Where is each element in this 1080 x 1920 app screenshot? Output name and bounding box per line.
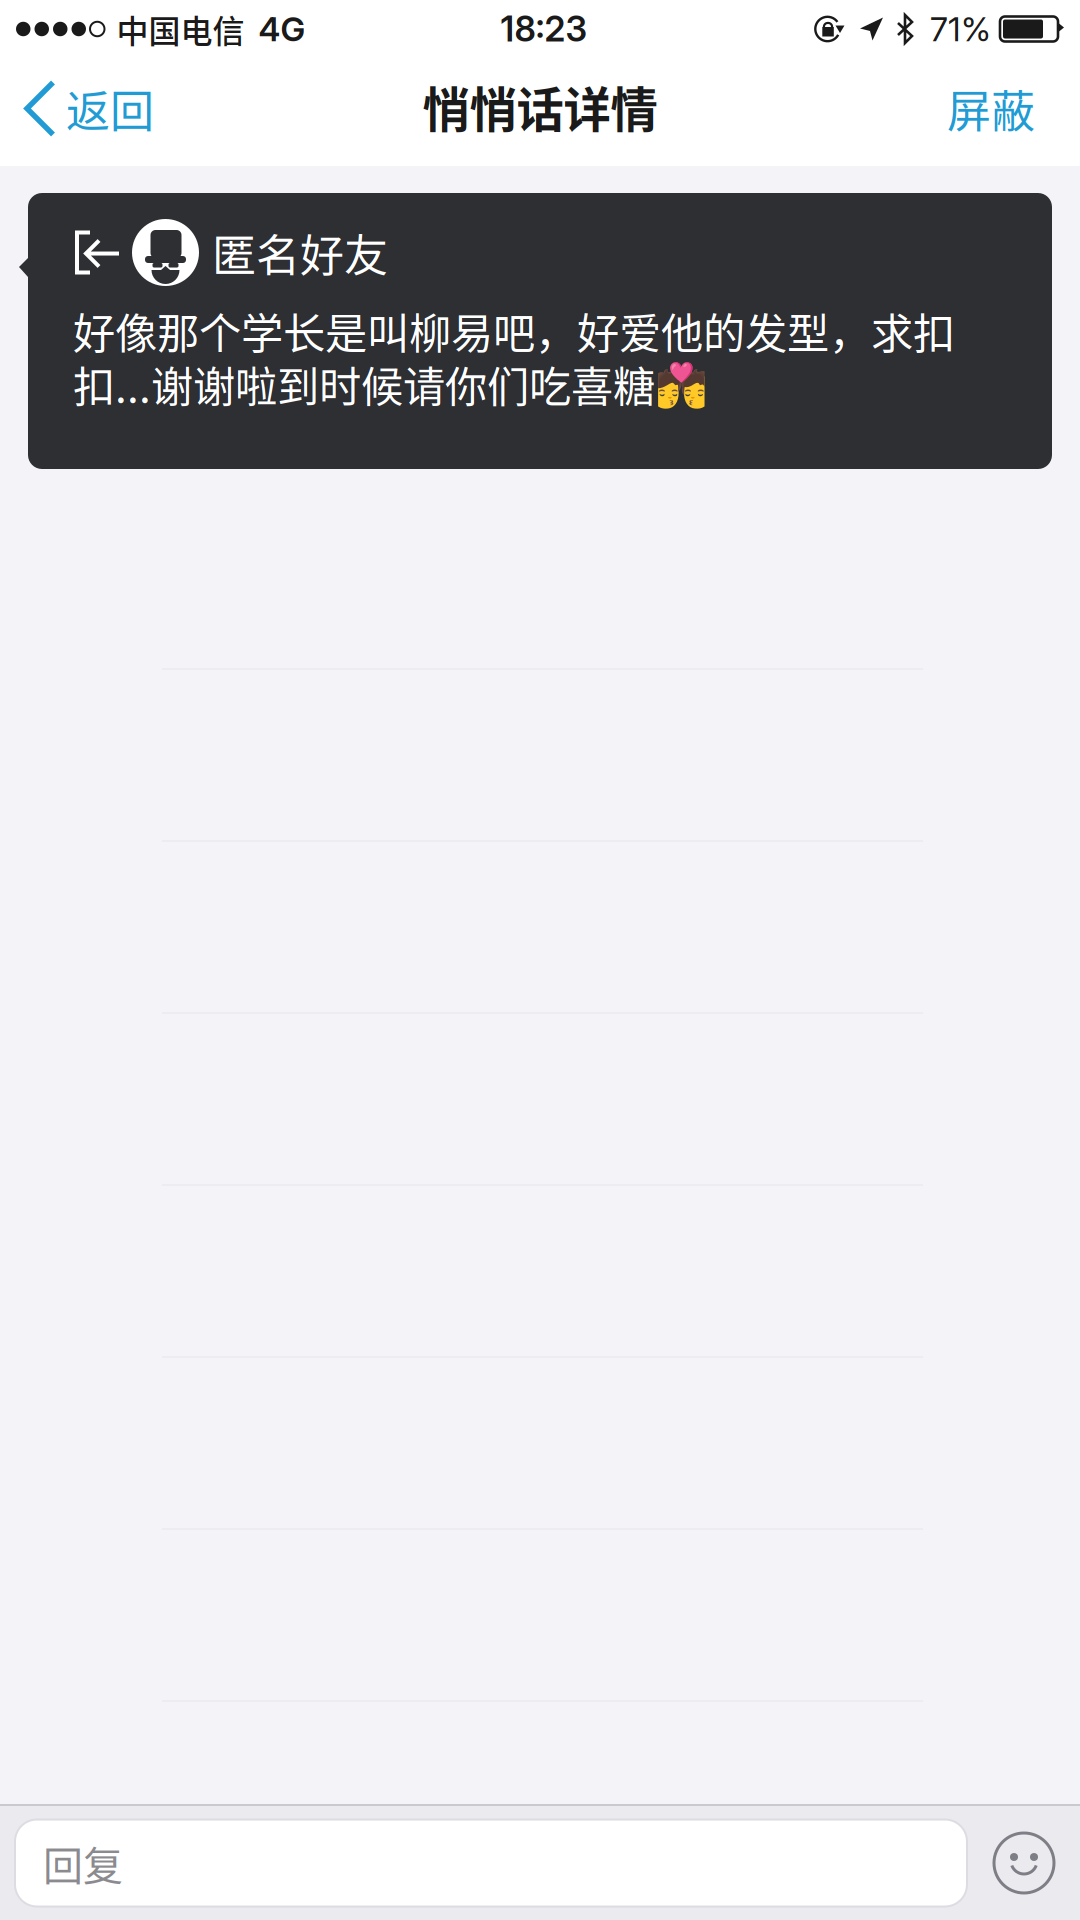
staticText: 中国电信 (116, 6, 244, 52)
staticText: 回复 (43, 1834, 123, 1892)
button[interactable]: Emoji (967, 1806, 1080, 1920)
staticText: 扣...谢谢啦到时候请你们吃喜糖💏 (73, 353, 708, 414)
staticText: 屏蔽 (947, 77, 1035, 140)
button[interactable]: 屏蔽 (931, 61, 1080, 161)
button[interactable]: 返回 (0, 61, 170, 161)
staticText: 悄悄话详情 (422, 72, 657, 141)
staticText: 返回 (66, 77, 154, 140)
staticText: 好像那个学长是叫柳易吧，好爱他的发型，求扣 (73, 300, 955, 361)
button[interactable]: 回复 (15, 1819, 967, 1906)
staticText: 71% (930, 9, 991, 49)
staticText: 18:23 (500, 8, 587, 50)
staticText: 4G (258, 9, 305, 49)
staticText: 匿名好友 (212, 221, 388, 284)
